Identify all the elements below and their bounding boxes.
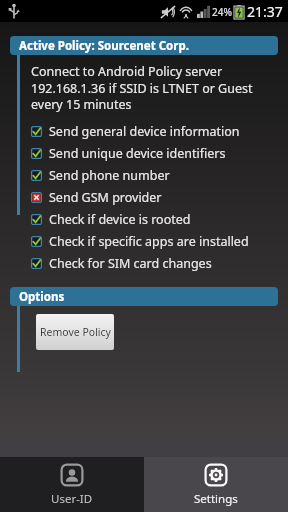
staticText: 21:37	[247, 2, 283, 21]
staticText: Settings	[194, 491, 238, 507]
staticText: Check if specific apps are installed	[49, 233, 249, 250]
staticText: Send phone number	[49, 167, 170, 184]
staticText: Connect to Android Policy server 192.168…	[31, 63, 276, 112]
button[interactable]: Settings	[144, 457, 288, 512]
staticText: Active Policy: Sourcenet Corp.	[19, 38, 189, 54]
staticText: Check if device is rooted	[49, 211, 191, 228]
button[interactable]: Send phone number	[20, 164, 288, 186]
button[interactable]: Options	[10, 287, 278, 306]
staticText: Check for SIM card changes	[49, 255, 212, 272]
staticText: Options	[19, 289, 65, 305]
button[interactable]: Check if device is rooted	[20, 208, 288, 230]
staticText: Send GSM provider	[49, 189, 162, 206]
staticText: Send unique device identifiers	[49, 145, 226, 162]
staticText: Send general device information	[49, 123, 240, 140]
button[interactable]: Active Policy: Sourcenet Corp.	[10, 36, 278, 55]
staticText: 24%	[212, 5, 232, 19]
button[interactable]: Check for SIM card changes	[20, 252, 288, 274]
staticText: Remove Policy	[40, 325, 111, 339]
button[interactable]: User-ID	[0, 457, 144, 512]
button[interactable]: Send GSM provider	[20, 186, 288, 208]
button[interactable]: Send unique device identifiers	[20, 142, 288, 164]
staticText: User-ID	[51, 491, 93, 507]
button[interactable]: Check if specific apps are installed	[20, 230, 288, 252]
button[interactable]: Remove Policy	[36, 314, 114, 350]
button[interactable]: Send general device information	[20, 120, 288, 142]
